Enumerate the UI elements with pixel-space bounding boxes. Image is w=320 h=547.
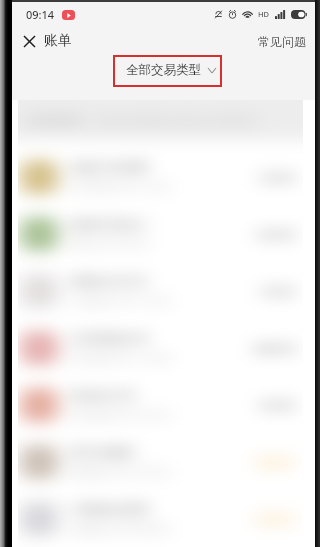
staticText: 滴滴出行打车 <box>70 273 148 289</box>
staticText: 常见问题 <box>258 34 306 49</box>
staticText: 全部交易类型 <box>126 62 201 78</box>
staticText: 微信红包收入 <box>70 216 148 232</box>
staticText: 待支付 <box>256 511 295 527</box>
staticText: -268.00 <box>250 339 295 357</box>
staticText: -18.50 <box>257 282 295 300</box>
button[interactable]: 拼多多订单 <box>18 376 303 433</box>
staticText: 账单 <box>44 32 72 50</box>
button[interactable]: 常见问题 <box>258 34 316 49</box>
staticText: +20.00 <box>254 225 295 243</box>
button[interactable]: 全部交易类型 <box>120 58 222 82</box>
button[interactable]: 关闭 <box>17 29 41 53</box>
button[interactable]: 星巴克咖啡 <box>18 433 303 490</box>
button[interactable]: 微信红包收入 <box>18 205 303 262</box>
staticText: 09:14 <box>26 7 55 22</box>
staticText: 星巴克咖啡 <box>70 444 135 460</box>
button[interactable]: 美团订单消费 <box>18 148 303 205</box>
button[interactable]: 滴滴出行打车 <box>18 262 303 319</box>
button[interactable]: 中国移动话费 <box>18 490 303 547</box>
staticText: HD <box>258 9 270 19</box>
staticText: 待支付 <box>256 454 295 470</box>
staticText: 京东商城订单 <box>70 330 148 346</box>
button[interactable]: 京东商城订单 <box>18 319 303 376</box>
staticText: 中国移动话费 <box>70 501 148 517</box>
